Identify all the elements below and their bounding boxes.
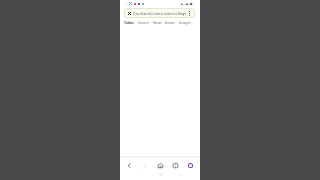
button[interactable]: Search xyxy=(138,20,149,25)
button[interactable]: Close xyxy=(127,11,132,16)
button[interactable]: News xyxy=(153,20,162,25)
button[interactable]: More options xyxy=(187,11,192,16)
button[interactable]: Tabs xyxy=(170,160,181,171)
button[interactable]: Menu xyxy=(185,160,196,171)
button[interactable]: Home xyxy=(155,160,166,171)
staticText: Images xyxy=(179,20,191,25)
button[interactable]: Forward xyxy=(139,160,150,171)
staticText: Can Kanshi store extensi flags xyxy=(133,11,187,16)
button[interactable]: Recent apps xyxy=(178,173,181,176)
button[interactable]: Close xyxy=(124,8,195,18)
button[interactable]: Back xyxy=(124,160,135,171)
staticText: News xyxy=(153,20,162,25)
button[interactable]: System back xyxy=(139,173,142,176)
staticText: Search xyxy=(138,20,149,25)
button[interactable]: System home xyxy=(159,173,162,176)
button[interactable]: Todos xyxy=(124,20,134,25)
button[interactable]: Books xyxy=(165,20,175,25)
staticText: Books xyxy=(165,20,175,25)
button[interactable]: Images xyxy=(179,20,191,25)
staticText: Todos xyxy=(124,20,134,25)
